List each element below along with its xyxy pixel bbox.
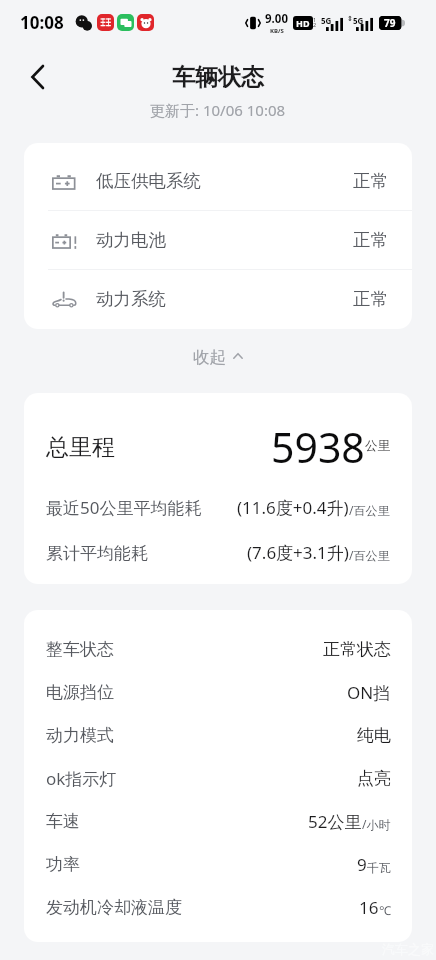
button[interactable]: 动力电池	[24, 211, 412, 269]
button[interactable]: 发动机冷却液温度	[46, 886, 391, 929]
button[interactable]: 收起	[0, 329, 436, 385]
staticText: 发动机冷却液温度	[46, 897, 182, 918]
staticText: 16	[359, 896, 379, 919]
staticText: 正常	[353, 288, 388, 310]
staticText: 9.00	[265, 11, 288, 27]
staticText: 更新于: 10/06 10:08	[150, 100, 286, 120]
staticText: 动力系统	[96, 288, 166, 310]
staticText: 5938	[271, 419, 365, 475]
staticText: 纯电	[357, 725, 391, 746]
button[interactable]: ok指示灯	[46, 757, 391, 800]
staticText: 5G	[321, 15, 332, 26]
staticText: 车辆状态	[172, 63, 264, 92]
staticText: 点亮	[357, 768, 391, 789]
staticText: 车速	[46, 811, 80, 832]
staticText: 9	[357, 853, 367, 876]
staticText: 5G	[353, 15, 364, 26]
staticText: 52公里	[308, 810, 362, 833]
button[interactable]: 电源挡位	[46, 671, 391, 714]
staticText: /百公里	[349, 547, 390, 563]
staticText: 正常	[353, 229, 388, 251]
staticText: 收起	[193, 347, 226, 368]
button[interactable]: 功率	[46, 843, 391, 886]
button[interactable]: 动力模式	[46, 714, 391, 757]
staticText: (7.6度+3.1升)	[247, 541, 349, 564]
staticText: 千瓦	[367, 860, 391, 875]
button[interactable]: 动力系统	[24, 270, 412, 328]
staticText: (11.6度+0.4升)	[237, 496, 349, 519]
staticText: ℃	[379, 902, 391, 918]
button[interactable]: 车速	[46, 800, 391, 843]
staticText: 正常	[353, 170, 388, 192]
staticText: 功率	[46, 854, 80, 875]
button[interactable]: 低压供电系统	[24, 152, 412, 210]
staticText: 1 2	[313, 16, 317, 29]
button[interactable]: 返回	[15, 55, 59, 99]
button[interactable]: 整车状态	[46, 628, 391, 671]
staticText: 正常状态	[323, 639, 391, 660]
staticText: 79	[384, 16, 396, 30]
staticText: 累计平均能耗	[46, 543, 148, 564]
staticText: 10:08	[20, 11, 64, 34]
staticText: /小时	[362, 816, 391, 832]
staticText: 动力模式	[46, 725, 114, 746]
staticText: 最近50公里平均能耗	[46, 496, 202, 519]
staticText: KB/S	[270, 27, 284, 35]
staticText: 总里程	[46, 433, 115, 462]
staticText: 动力电池	[96, 229, 166, 251]
staticText: ON挡	[347, 681, 391, 704]
staticText: ok指示灯	[46, 767, 117, 790]
staticText: /百公里	[349, 502, 390, 518]
staticText: 公里	[365, 438, 390, 454]
staticText: HD	[296, 17, 310, 29]
staticText: 整车状态	[46, 639, 114, 660]
staticText: 电源挡位	[46, 682, 114, 703]
staticText: 低压供电系统	[96, 170, 201, 192]
staticText: ⇕	[347, 15, 353, 23]
